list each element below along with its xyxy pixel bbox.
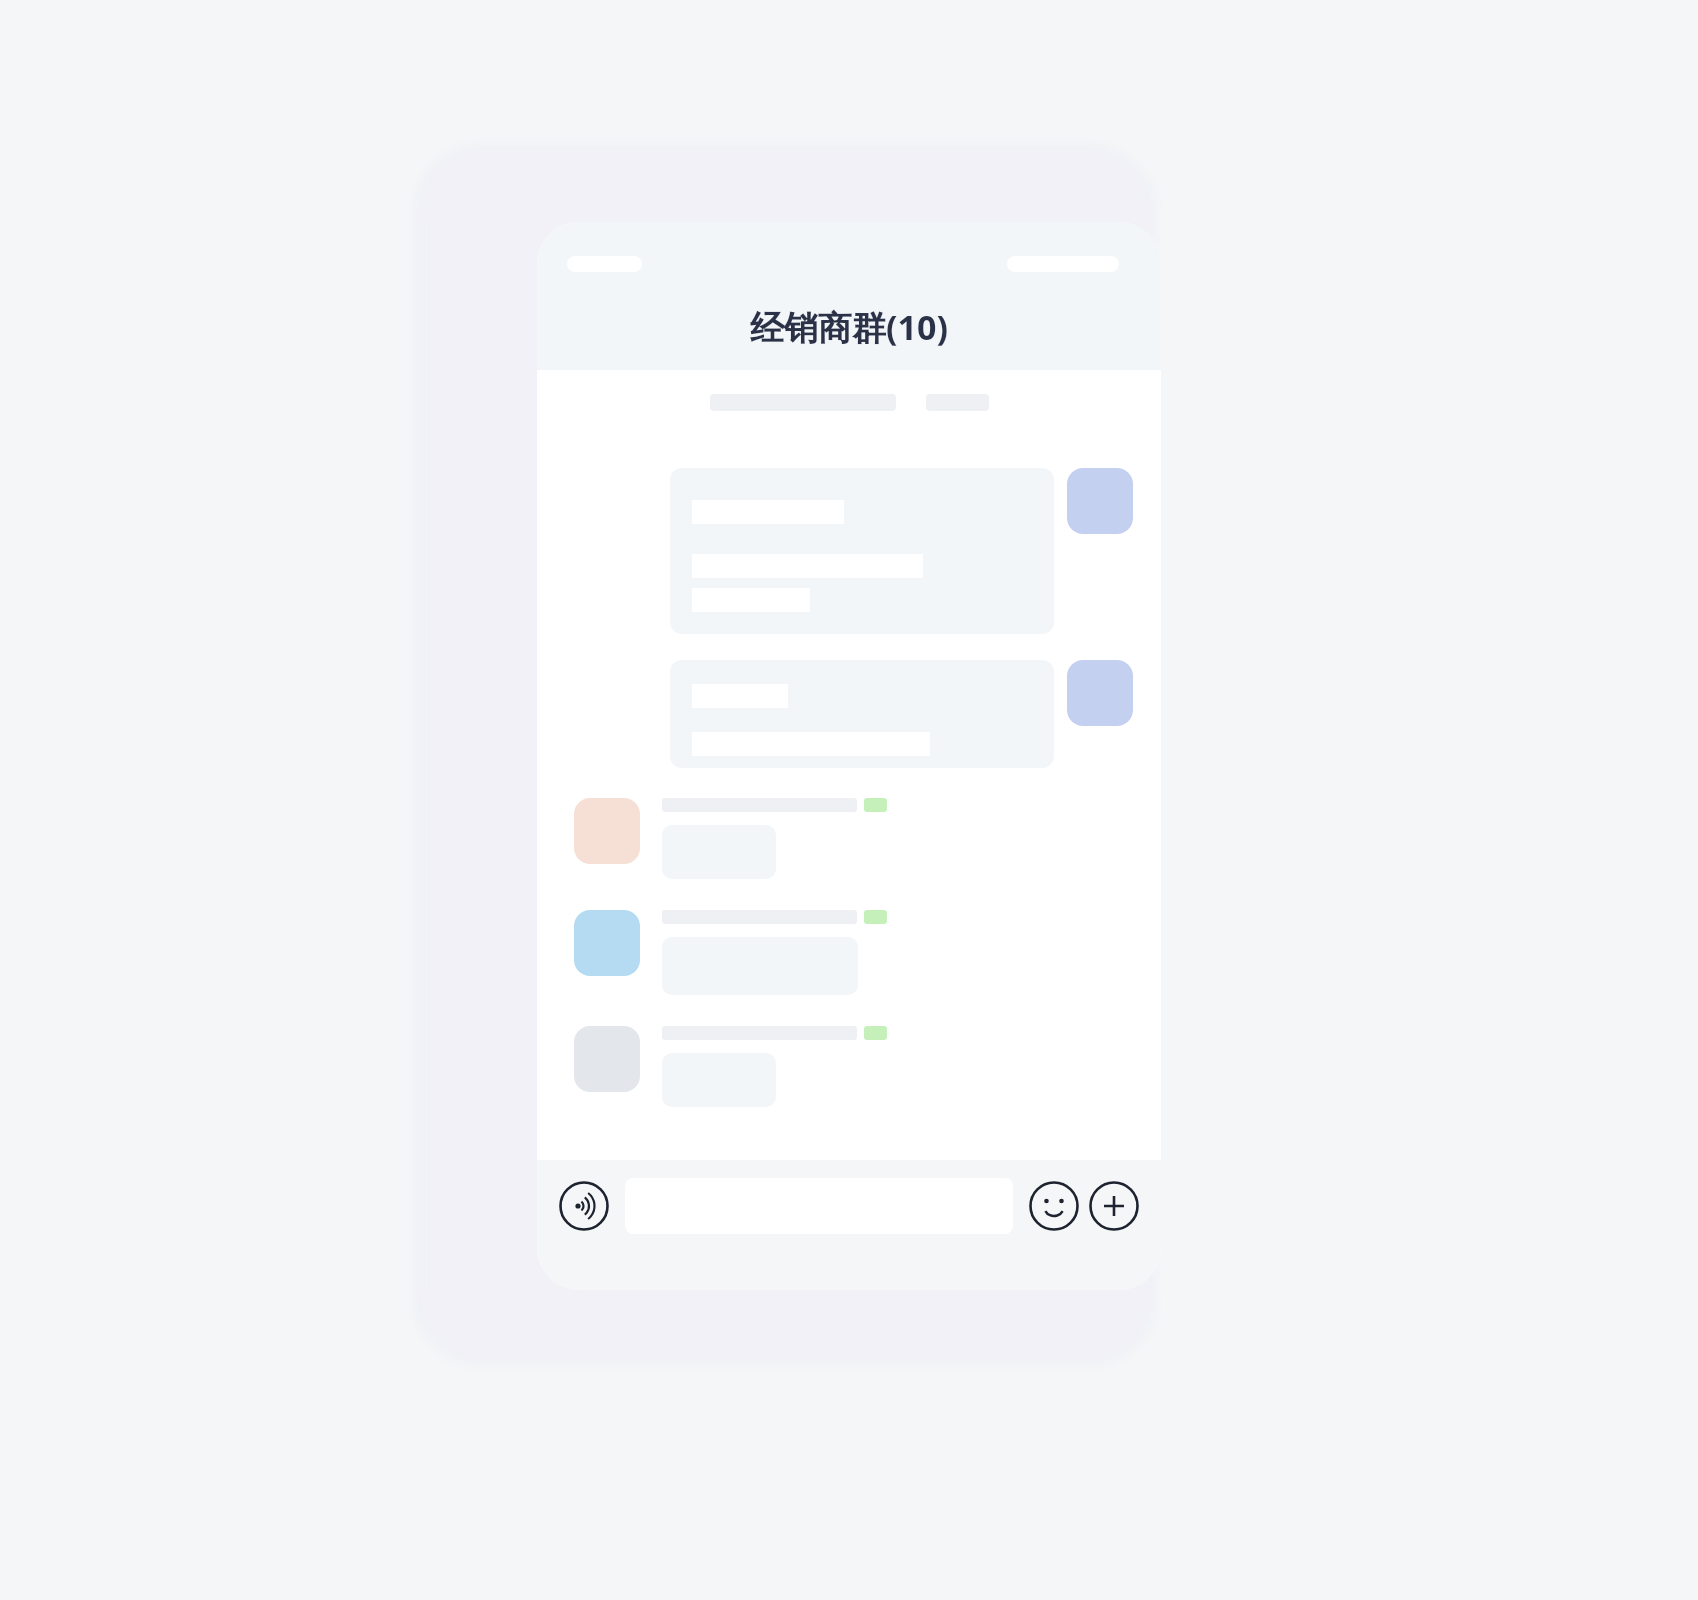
button[interactable] [537,1026,1161,1107]
button[interactable] [537,798,1161,879]
button[interactable] [537,468,1161,634]
button[interactable] [537,910,1161,995]
button[interactable]: Emoji [1029,1181,1079,1231]
staticText: 经销商群(10) [750,304,948,350]
button[interactable] [537,660,1161,768]
button[interactable]: Add [1089,1181,1139,1231]
button[interactable]: Voice message [559,1181,609,1231]
